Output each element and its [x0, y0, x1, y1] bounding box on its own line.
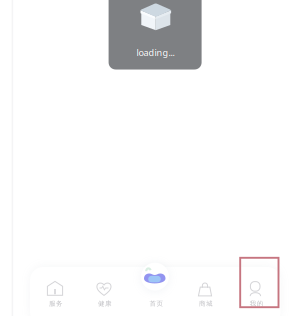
staticText: loading...	[137, 46, 175, 58]
staticText: 健康	[98, 299, 112, 308]
button[interactable]: 服务	[30, 271, 80, 316]
staticText: 商城	[199, 299, 213, 308]
button[interactable]: 首页	[130, 271, 180, 316]
staticText: 我的	[250, 299, 264, 308]
button[interactable]: 商城	[180, 271, 230, 316]
staticText: 服务	[49, 299, 63, 308]
button[interactable]: 我的	[231, 271, 281, 316]
staticText: 首页	[149, 299, 163, 308]
button[interactable]: 健康	[79, 271, 129, 316]
